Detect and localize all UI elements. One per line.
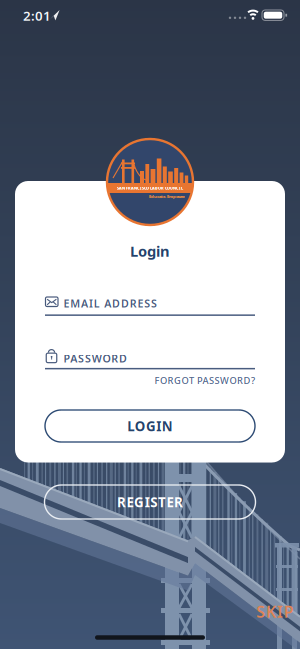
staticText: PASSWORD xyxy=(63,351,127,365)
button[interactable]: FORGOT PASSWORD? xyxy=(45,374,255,387)
staticText: Login xyxy=(130,241,170,261)
button[interactable]: LOGIN xyxy=(45,410,255,442)
staticText: REGISTER xyxy=(117,493,183,511)
button[interactable]: REGISTER xyxy=(44,485,255,519)
staticText: SAN FRANCISCO LABOR COUNCIL xyxy=(117,185,183,191)
button[interactable]: PASSWORD xyxy=(45,344,255,370)
button[interactable]: EMAIL ADDRESS xyxy=(45,291,255,317)
staticText: SAN FRANCISCO LABOR COUNCIL xyxy=(117,185,183,191)
staticText: EMAIL ADDRESS xyxy=(63,296,157,310)
staticText: FORGOT PASSWORD? xyxy=(154,374,255,387)
staticText: 2:01 xyxy=(23,7,51,24)
staticText: Educate. Empower. xyxy=(149,194,185,199)
staticText: SKIP xyxy=(256,601,294,622)
button[interactable]: SKIP xyxy=(256,601,294,622)
staticText: LOGIN xyxy=(127,417,173,435)
staticText: Educate. Empower. xyxy=(149,194,185,199)
